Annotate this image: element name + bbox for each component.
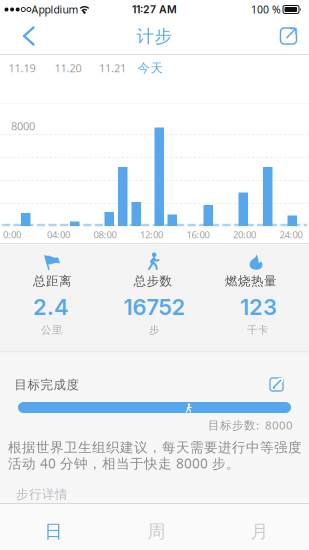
staticText: 步 [149, 323, 160, 337]
staticText: 今天 [137, 60, 163, 76]
staticText: 0:00 [3, 228, 21, 241]
staticText: 04:00 [47, 228, 70, 241]
staticText: 公里 [41, 323, 63, 337]
staticText: 2.4 [33, 294, 69, 320]
staticText: 计步 [136, 25, 172, 47]
staticText: 11.21 [99, 60, 126, 75]
button[interactable]: Share [269, 19, 309, 51]
staticText: 千卡 [247, 323, 269, 337]
staticText: 周 [147, 520, 165, 543]
staticText: 16:00 [186, 228, 209, 241]
staticText: 根据世界卫生组织建议，每天需要进行中等强度 [8, 439, 302, 456]
staticText: 总步数 [133, 273, 172, 289]
staticText: 日 [44, 520, 62, 543]
staticText: 11.19 [8, 60, 35, 75]
staticText: 11:27 AM [132, 3, 177, 16]
staticText: 燃烧热量 [225, 273, 277, 289]
staticText: 12:00 [140, 228, 163, 241]
staticText: 16752 [123, 294, 185, 320]
staticText: 08:00 [93, 228, 116, 241]
staticText: 8000 [11, 118, 35, 133]
button[interactable]: Edit goal [263, 371, 291, 397]
button[interactable]: 日 [0, 504, 103, 550]
staticText: 24:00 [279, 228, 302, 241]
button[interactable]: Back [7, 19, 51, 53]
staticText: 步行详情 [16, 486, 68, 502]
staticText: Appldium [31, 2, 78, 17]
button[interactable]: 11.19 [2, 56, 42, 80]
button[interactable]: 今天 [132, 56, 168, 80]
button[interactable]: 周 [103, 504, 206, 550]
button[interactable]: 11.20 [48, 56, 88, 80]
staticText: 100 % [251, 2, 281, 17]
staticText: 总距离 [33, 273, 72, 289]
staticText: 活动 40 分钟，相当于快走 8000 步。 [8, 454, 240, 472]
button[interactable]: 月 [206, 504, 309, 550]
staticText: 20:00 [233, 228, 256, 241]
staticText: 目标步数: 8000 [208, 417, 293, 433]
staticText: 11.20 [54, 60, 81, 75]
staticText: 目标完成度 [14, 377, 79, 393]
button[interactable]: 11.21 [92, 56, 132, 80]
staticText: 123 [240, 294, 277, 320]
staticText: 月 [250, 520, 268, 543]
